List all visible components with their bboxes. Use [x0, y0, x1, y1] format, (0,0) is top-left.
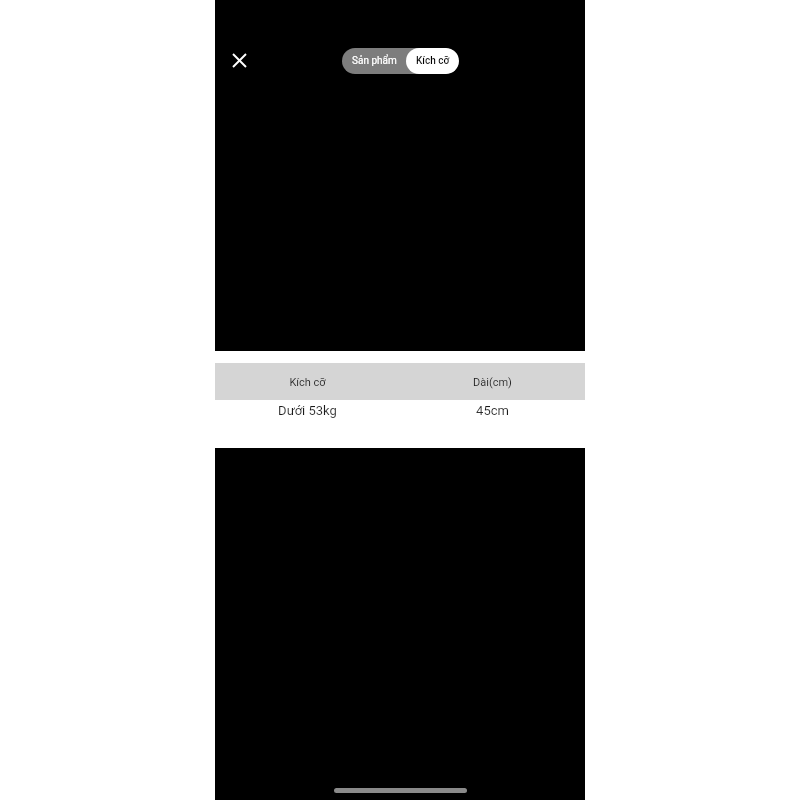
staticText: 45cm — [476, 403, 509, 418]
button[interactable]: Sản phẩm — [342, 48, 406, 74]
staticText: Sản phẩm — [352, 55, 397, 67]
button[interactable]: Close — [219, 40, 259, 80]
staticText: Kích cỡ — [289, 376, 326, 389]
staticText: Dưới 53kg — [278, 403, 337, 418]
button[interactable]: Kích cỡ — [406, 48, 459, 74]
staticText: Dài(cm) — [473, 376, 512, 389]
staticText: Kích cỡ — [416, 55, 450, 67]
